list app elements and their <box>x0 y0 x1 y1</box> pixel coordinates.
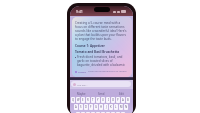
staticText: sounds like a wonderful idea! Here's <box>75 29 127 33</box>
button[interactable]: B <box>126 97 130 103</box>
button[interactable]: X <box>81 112 85 113</box>
staticText: U <box>102 98 104 102</box>
staticText: focus on different taste sensations <box>75 25 125 29</box>
staticText: baguette, drizzled with a balsamic <box>77 63 125 67</box>
staticText: Copied <box>78 70 86 73</box>
staticText: L <box>115 105 117 109</box>
staticText: A <box>122 98 124 102</box>
staticText: W <box>77 98 80 102</box>
button[interactable]: U <box>101 97 105 103</box>
button[interactable]: Send <box>92 92 111 96</box>
staticText: to engage the taste buds. <box>75 37 112 41</box>
staticText: P <box>117 98 119 102</box>
button[interactable]: L <box>114 104 118 110</box>
button[interactable]: H <box>99 104 103 110</box>
staticText: Maybe <box>77 92 86 96</box>
button[interactable]: J <box>104 104 108 110</box>
button[interactable]: R <box>86 97 90 103</box>
button[interactable]: Z <box>76 112 80 113</box>
staticText: 9:41 <box>76 9 83 14</box>
button[interactable]: Q <box>111 112 115 113</box>
button[interactable]: D <box>84 104 88 110</box>
staticText: I <box>108 98 109 102</box>
staticText: Tomato and Basil Bruschetta <box>75 50 120 54</box>
staticText: N <box>125 105 128 109</box>
staticText: R <box>87 98 89 102</box>
button[interactable]: F <box>89 104 93 110</box>
button[interactable]: I <box>106 97 110 103</box>
staticText: Great Recommendations on recipes <box>88 70 127 73</box>
staticText: Send <box>98 92 105 96</box>
staticText: garlic on toasted slices of <box>77 59 113 63</box>
button[interactable]: M <box>106 112 110 113</box>
staticText: M <box>120 105 123 109</box>
staticText: B <box>127 98 129 102</box>
button[interactable]: A <box>74 104 78 110</box>
staticText: Creating a 5-course meal with a <box>75 21 121 25</box>
staticText: K <box>110 105 112 109</box>
button[interactable]: T <box>91 97 95 103</box>
staticText: a plan that builds upon your flavors <box>75 33 126 37</box>
staticText: J <box>106 105 107 109</box>
button[interactable]: E <box>81 97 85 103</box>
button[interactable]: Ask me... <box>71 81 131 87</box>
staticText: Q <box>72 98 75 102</box>
staticText: T <box>92 98 94 102</box>
button[interactable]: S <box>79 104 83 110</box>
button[interactable]: A <box>121 97 125 103</box>
staticText: Ask me... <box>77 83 88 86</box>
staticText: H <box>100 105 102 109</box>
staticText: Course 1: Appetizer <box>75 44 105 48</box>
staticText: F <box>90 105 92 109</box>
staticText: A <box>75 105 77 109</box>
button[interactable]: V <box>91 112 95 113</box>
button[interactable]: Copied <box>75 70 127 73</box>
button[interactable]: O <box>111 97 115 103</box>
button[interactable]: Edit <box>112 92 131 96</box>
button[interactable]: Y <box>96 97 100 103</box>
button[interactable]: N <box>101 112 105 113</box>
staticText: Y <box>97 98 99 102</box>
button[interactable]: E <box>121 112 125 113</box>
staticText: Fresh diced tomatoes, basil, and <box>77 55 123 59</box>
button[interactable]: K <box>109 104 113 110</box>
button[interactable]: M <box>119 104 123 110</box>
button[interactable]: Q <box>71 97 75 103</box>
staticText: Edit <box>119 92 124 96</box>
staticText: D <box>85 105 87 109</box>
button[interactable]: Creating a 5-course meal with a <box>72 17 132 77</box>
staticText: O <box>112 98 115 102</box>
button[interactable]: Maybe <box>72 92 91 96</box>
button[interactable]: N <box>124 104 128 110</box>
button[interactable]: P <box>116 97 120 103</box>
staticText: E <box>82 98 84 102</box>
button[interactable]: W <box>76 97 80 103</box>
button[interactable]: B <box>96 112 100 113</box>
staticText: G <box>95 105 97 109</box>
button[interactable]: C <box>86 112 90 113</box>
staticText: S <box>80 105 82 109</box>
button[interactable]: G <box>94 104 98 110</box>
button[interactable]: W <box>116 112 120 113</box>
